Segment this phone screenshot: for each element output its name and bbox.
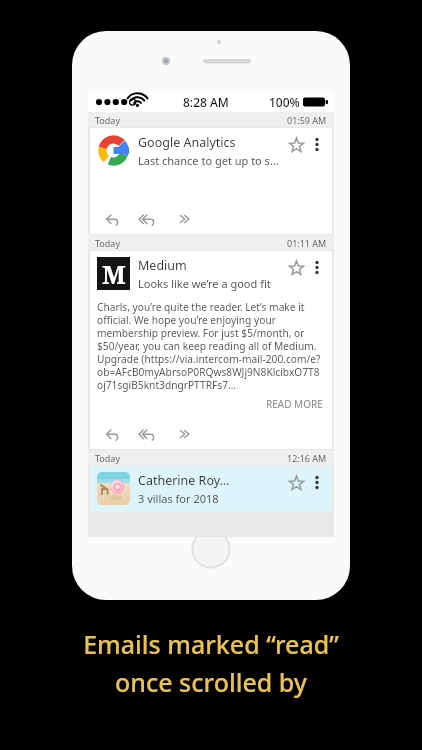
button[interactable]: Star xyxy=(285,257,307,279)
button[interactable]: Google Analytics xyxy=(90,128,332,234)
staticText: 12:16 AM xyxy=(287,452,327,464)
staticText: 01:11 AM xyxy=(287,237,327,249)
staticText: once scrolled by xyxy=(115,665,307,699)
button[interactable]: Star xyxy=(285,134,307,156)
button[interactable]: More options xyxy=(307,472,327,492)
staticText: Emails marked “read” xyxy=(83,627,339,661)
staticText: Today xyxy=(95,237,120,249)
staticText: READ MORE xyxy=(266,397,323,411)
staticText: 01:59 AM xyxy=(287,114,327,126)
staticText: Medium xyxy=(138,257,187,274)
button[interactable]: Forward xyxy=(172,422,196,446)
staticText: Catherine Roy… xyxy=(138,472,230,489)
staticText: Today xyxy=(95,452,120,464)
staticText: Last chance to get up to s… xyxy=(138,153,279,168)
button[interactable]: Reply all xyxy=(136,422,160,446)
staticText: Charls, you’re quite the reader. Let’s m… xyxy=(97,300,325,392)
staticText: 100% xyxy=(269,94,300,110)
button[interactable]: More options xyxy=(307,134,327,154)
button[interactable]: Star xyxy=(285,472,307,494)
staticText: Google Analytics xyxy=(138,134,236,151)
staticText: M xyxy=(102,257,126,290)
button[interactable]: READ MORE xyxy=(264,395,325,413)
staticText: 8:28 AM xyxy=(183,94,229,110)
staticText: Looks like we’re a good fit xyxy=(138,276,271,291)
button[interactable]: Catherine Roy… xyxy=(90,466,332,512)
staticText: Today xyxy=(95,114,120,126)
button[interactable]: More options xyxy=(307,257,327,277)
button[interactable]: Forward xyxy=(172,207,196,231)
button[interactable]: Reply xyxy=(100,422,124,446)
button[interactable]: M xyxy=(90,251,332,449)
button[interactable]: Reply xyxy=(100,207,124,231)
staticText: 3 villas for 2018 xyxy=(138,491,219,506)
button[interactable]: Reply all xyxy=(136,207,160,231)
